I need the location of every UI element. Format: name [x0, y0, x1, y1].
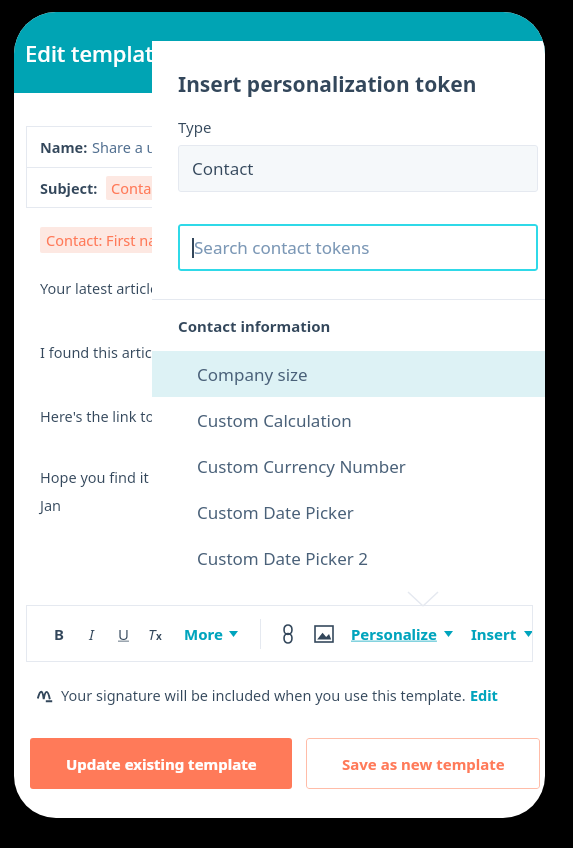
button[interactable]: Edit signature: [470, 685, 545, 705]
button[interactable]: Insert link: [281, 625, 295, 643]
staticText: Edit template: [25, 38, 167, 68]
staticText: Insert personalization token: [178, 70, 477, 99]
staticText: I found this article helpful too.: [40, 342, 246, 362]
button[interactable]: Company size: [152, 351, 545, 397]
button[interactable]: Insert: [471, 624, 533, 644]
button[interactable]: Custom Calculation: [152, 397, 545, 443]
staticText: Custom Date Picker: [197, 501, 354, 524]
staticText: Custom Date Picker 2: [197, 547, 368, 570]
staticText: More: [184, 624, 223, 644]
staticText: T: [148, 624, 156, 644]
button[interactable]: Custom Date Picker: [152, 489, 545, 535]
button[interactable]: Insert image: [315, 626, 333, 642]
staticText: Update existing template: [66, 754, 257, 774]
staticText: Insert: [471, 624, 517, 644]
staticText: Name:: [40, 137, 92, 157]
staticText: Contact information: [178, 316, 331, 336]
staticText: Custom Currency Number: [197, 455, 406, 478]
button[interactable]: U: [115, 624, 132, 644]
button[interactable]: More: [184, 624, 238, 644]
button[interactable]: Save as new template: [306, 738, 540, 789]
staticText: Search contact tokens: [194, 236, 370, 259]
staticText: Contact: First name: [111, 178, 244, 198]
button[interactable]: B: [50, 624, 68, 644]
staticText: Custom Calculation: [197, 409, 352, 432]
staticText: Personalize: [351, 624, 437, 644]
staticText: Share a useful article: [92, 137, 235, 157]
button[interactable]: Clear formatting: [148, 624, 162, 644]
button[interactable]: Custom Date Picker 2: [152, 535, 545, 581]
button[interactable]: Personalize: [351, 624, 453, 644]
staticText: Jan: [40, 495, 62, 515]
staticText: Your signature will be included when you…: [61, 685, 470, 705]
button[interactable]: I: [85, 624, 98, 644]
staticText: Save as new template: [342, 754, 505, 774]
staticText: Hope you find it useful,: [40, 467, 199, 487]
staticText: x: [156, 629, 162, 643]
button[interactable]: Contact: [178, 145, 538, 192]
button[interactable]: Update existing template: [30, 738, 292, 789]
staticText: Here's the link to the piece.: [40, 406, 225, 426]
staticText: Company size: [197, 363, 308, 386]
staticText: Contact: [192, 157, 254, 180]
staticText: Type: [178, 117, 212, 137]
staticText: Contact: First name,: [46, 230, 183, 250]
staticText: Your latest article was great.: [40, 278, 233, 298]
staticText: Subject:: [40, 178, 102, 198]
button[interactable]: Search contact tokens: [178, 224, 538, 271]
button[interactable]: Custom Currency Number: [152, 443, 545, 489]
